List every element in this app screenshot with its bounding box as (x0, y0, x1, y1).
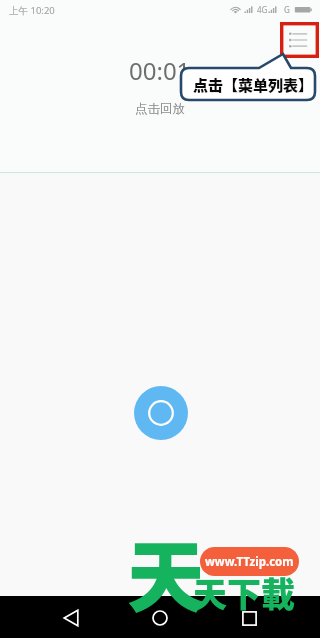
staticText: 4G (257, 4, 268, 15)
staticText: www.TTzip.com (205, 554, 294, 570)
staticText: 天 (127, 516, 206, 629)
staticText: 点击回放 (135, 101, 185, 117)
button[interactable]: Record (134, 386, 188, 440)
staticText: 点击【菜单列表】 (193, 74, 314, 96)
staticText: G (284, 4, 290, 15)
button[interactable]: Menu list (280, 22, 319, 58)
staticText: 00:01 (129, 54, 191, 87)
button[interactable]: Back (51, 598, 91, 638)
button[interactable]: Home (140, 598, 180, 638)
staticText: 天下載 (193, 568, 295, 617)
staticText: 上午 10:20 (9, 4, 55, 17)
button[interactable]: Recents (229, 598, 269, 638)
